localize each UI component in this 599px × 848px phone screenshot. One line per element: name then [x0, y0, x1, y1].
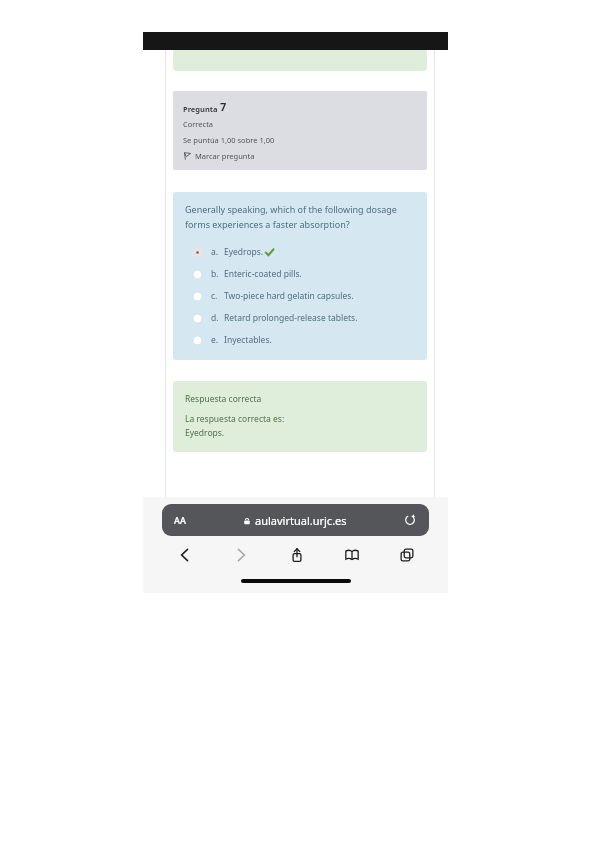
button[interactable]: Back — [157, 536, 213, 574]
button[interactable]: Bookmarks — [324, 536, 379, 574]
staticText: Inyectables. — [224, 334, 272, 346]
staticText: c. — [211, 290, 224, 302]
button[interactable]: Marcar pregunta — [183, 151, 255, 161]
staticText: La respuesta correcta es: Eyedrops. — [185, 413, 285, 438]
staticText: Retard prolonged-release tablets. — [224, 312, 358, 324]
staticText: b. — [211, 268, 224, 280]
button[interactable]: Tabs — [379, 536, 434, 574]
staticText: 7 — [220, 99, 227, 114]
staticText: d. — [211, 312, 224, 324]
button[interactable]: e. — [185, 334, 418, 346]
button[interactable]: a. — [185, 246, 418, 258]
button[interactable]: Reload — [403, 513, 417, 527]
staticText: Two-piece hard gelatin capsules. — [224, 290, 354, 302]
button[interactable]: b. — [185, 268, 418, 280]
staticText: Respuesta correcta — [185, 393, 262, 405]
button[interactable]: AA — [162, 504, 429, 536]
staticText: Eyedrops. — [224, 246, 264, 258]
staticText: Correcta — [183, 119, 214, 129]
button[interactable]: Forward — [213, 536, 269, 574]
staticText: Generally speaking, which of the followi… — [185, 203, 418, 231]
staticText: Enteric-coated pills. — [224, 268, 302, 280]
button[interactable]: Share — [269, 536, 324, 574]
button[interactable]: d. — [185, 312, 418, 324]
staticText: aulavirtual.urjc.es — [255, 513, 347, 528]
button[interactable]: c. — [185, 290, 418, 302]
button[interactable]: Pregunta — [173, 91, 427, 170]
staticText: Marcar pregunta — [195, 151, 255, 161]
staticText: Pregunta — [183, 104, 220, 114]
staticText: a. — [211, 246, 224, 258]
staticText: e. — [211, 334, 224, 346]
staticText: Se puntúa 1,00 sobre 1,00 — [183, 135, 275, 145]
staticText: AA — [174, 514, 186, 526]
